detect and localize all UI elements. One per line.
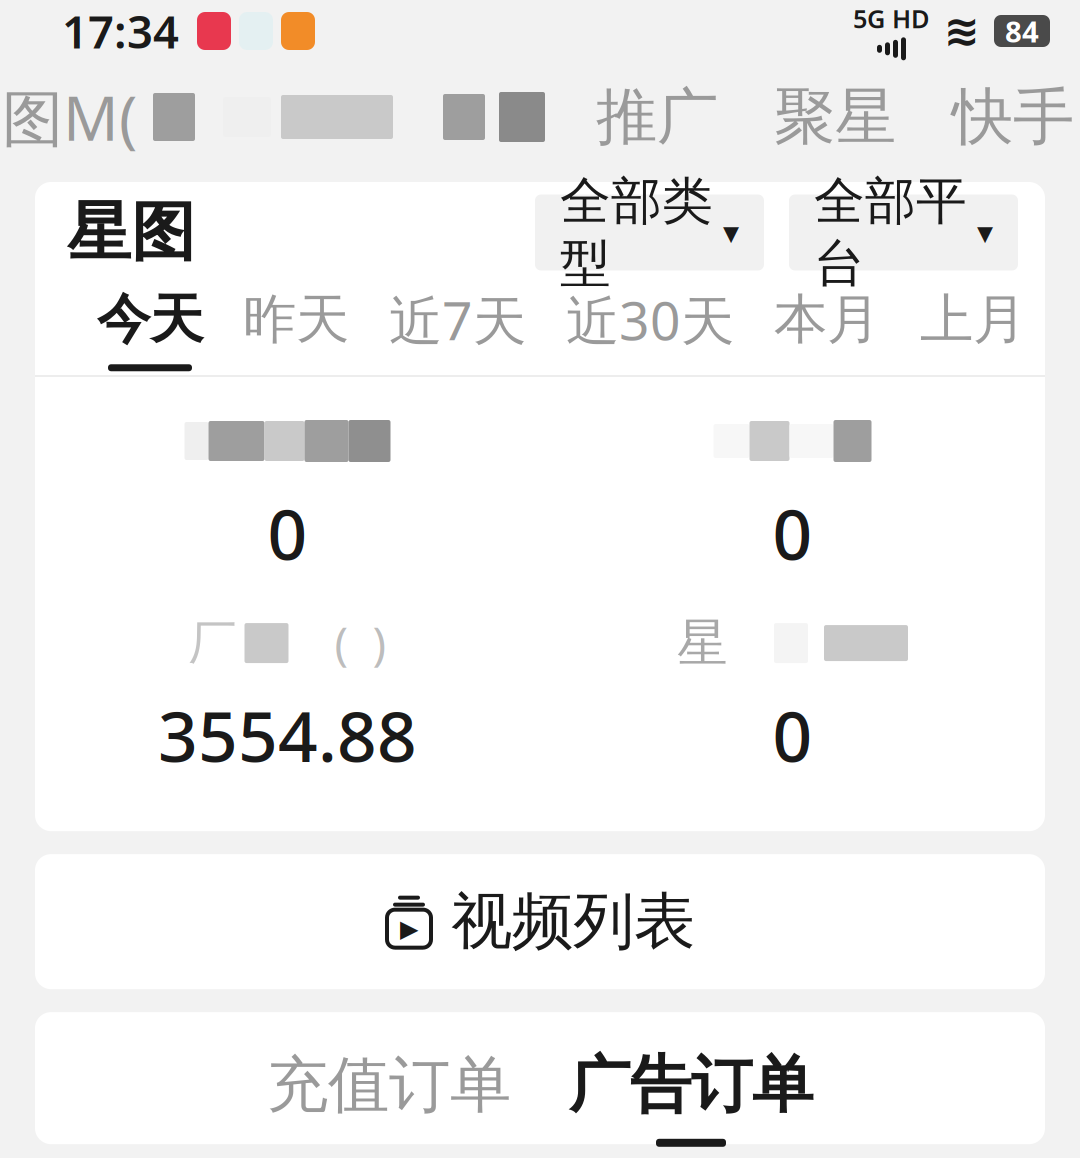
staticText: 星: [677, 612, 728, 674]
staticText: 近30天: [566, 284, 734, 355]
staticText: ▾: [723, 214, 739, 251]
button[interactable]: 上月: [920, 287, 1026, 371]
staticText: 视频列表: [451, 884, 695, 959]
staticText: 本月: [774, 287, 880, 352]
staticText: ≋: [944, 7, 980, 55]
staticText: 0: [772, 689, 812, 781]
staticText: 0: [267, 487, 307, 579]
staticText: 聚星: [774, 79, 896, 155]
button[interactable]: 今天: [97, 287, 203, 371]
button[interactable]: ▶: [35, 854, 1045, 989]
staticText: 充值订单: [267, 1047, 511, 1123]
button[interactable]: 推广: [596, 79, 718, 155]
staticText: ( ): [334, 613, 386, 673]
staticText: 快手: [952, 79, 1074, 155]
staticText: 5G HD: [853, 2, 930, 35]
button[interactable]: 快手: [896, 79, 1074, 155]
staticText: 84: [1005, 11, 1039, 50]
staticText: 上月: [920, 287, 1026, 352]
staticText: 推广: [596, 79, 718, 155]
button[interactable]: 广告订单: [569, 1047, 813, 1147]
staticText: 广告订单: [569, 1047, 813, 1123]
staticText: 今天: [97, 287, 203, 352]
staticText: 图M(: [2, 76, 137, 158]
staticText: ▶: [400, 915, 418, 942]
button[interactable]: 全部类型: [535, 194, 764, 270]
button[interactable]: 近7天: [389, 284, 526, 374]
staticText: 全部平台: [814, 170, 967, 295]
button[interactable]: 全部平台: [789, 194, 1018, 270]
staticText: 昨天: [243, 287, 349, 352]
button[interactable]: 昨天: [243, 287, 349, 371]
staticText: 3554.88: [158, 689, 417, 781]
button[interactable]: 近30天: [566, 284, 734, 374]
staticText: ▾: [977, 214, 993, 251]
button[interactable]: 充值订单: [267, 1047, 511, 1147]
staticText: 0: [772, 487, 812, 579]
staticText: 近7天: [389, 284, 526, 355]
staticText: 17:34: [62, 1, 179, 61]
staticText: 厂: [188, 614, 236, 673]
staticText: 星图: [67, 193, 195, 272]
staticText: 全部类型: [560, 170, 713, 295]
button[interactable]: 本月: [774, 287, 880, 371]
button[interactable]: 聚星: [718, 79, 896, 155]
